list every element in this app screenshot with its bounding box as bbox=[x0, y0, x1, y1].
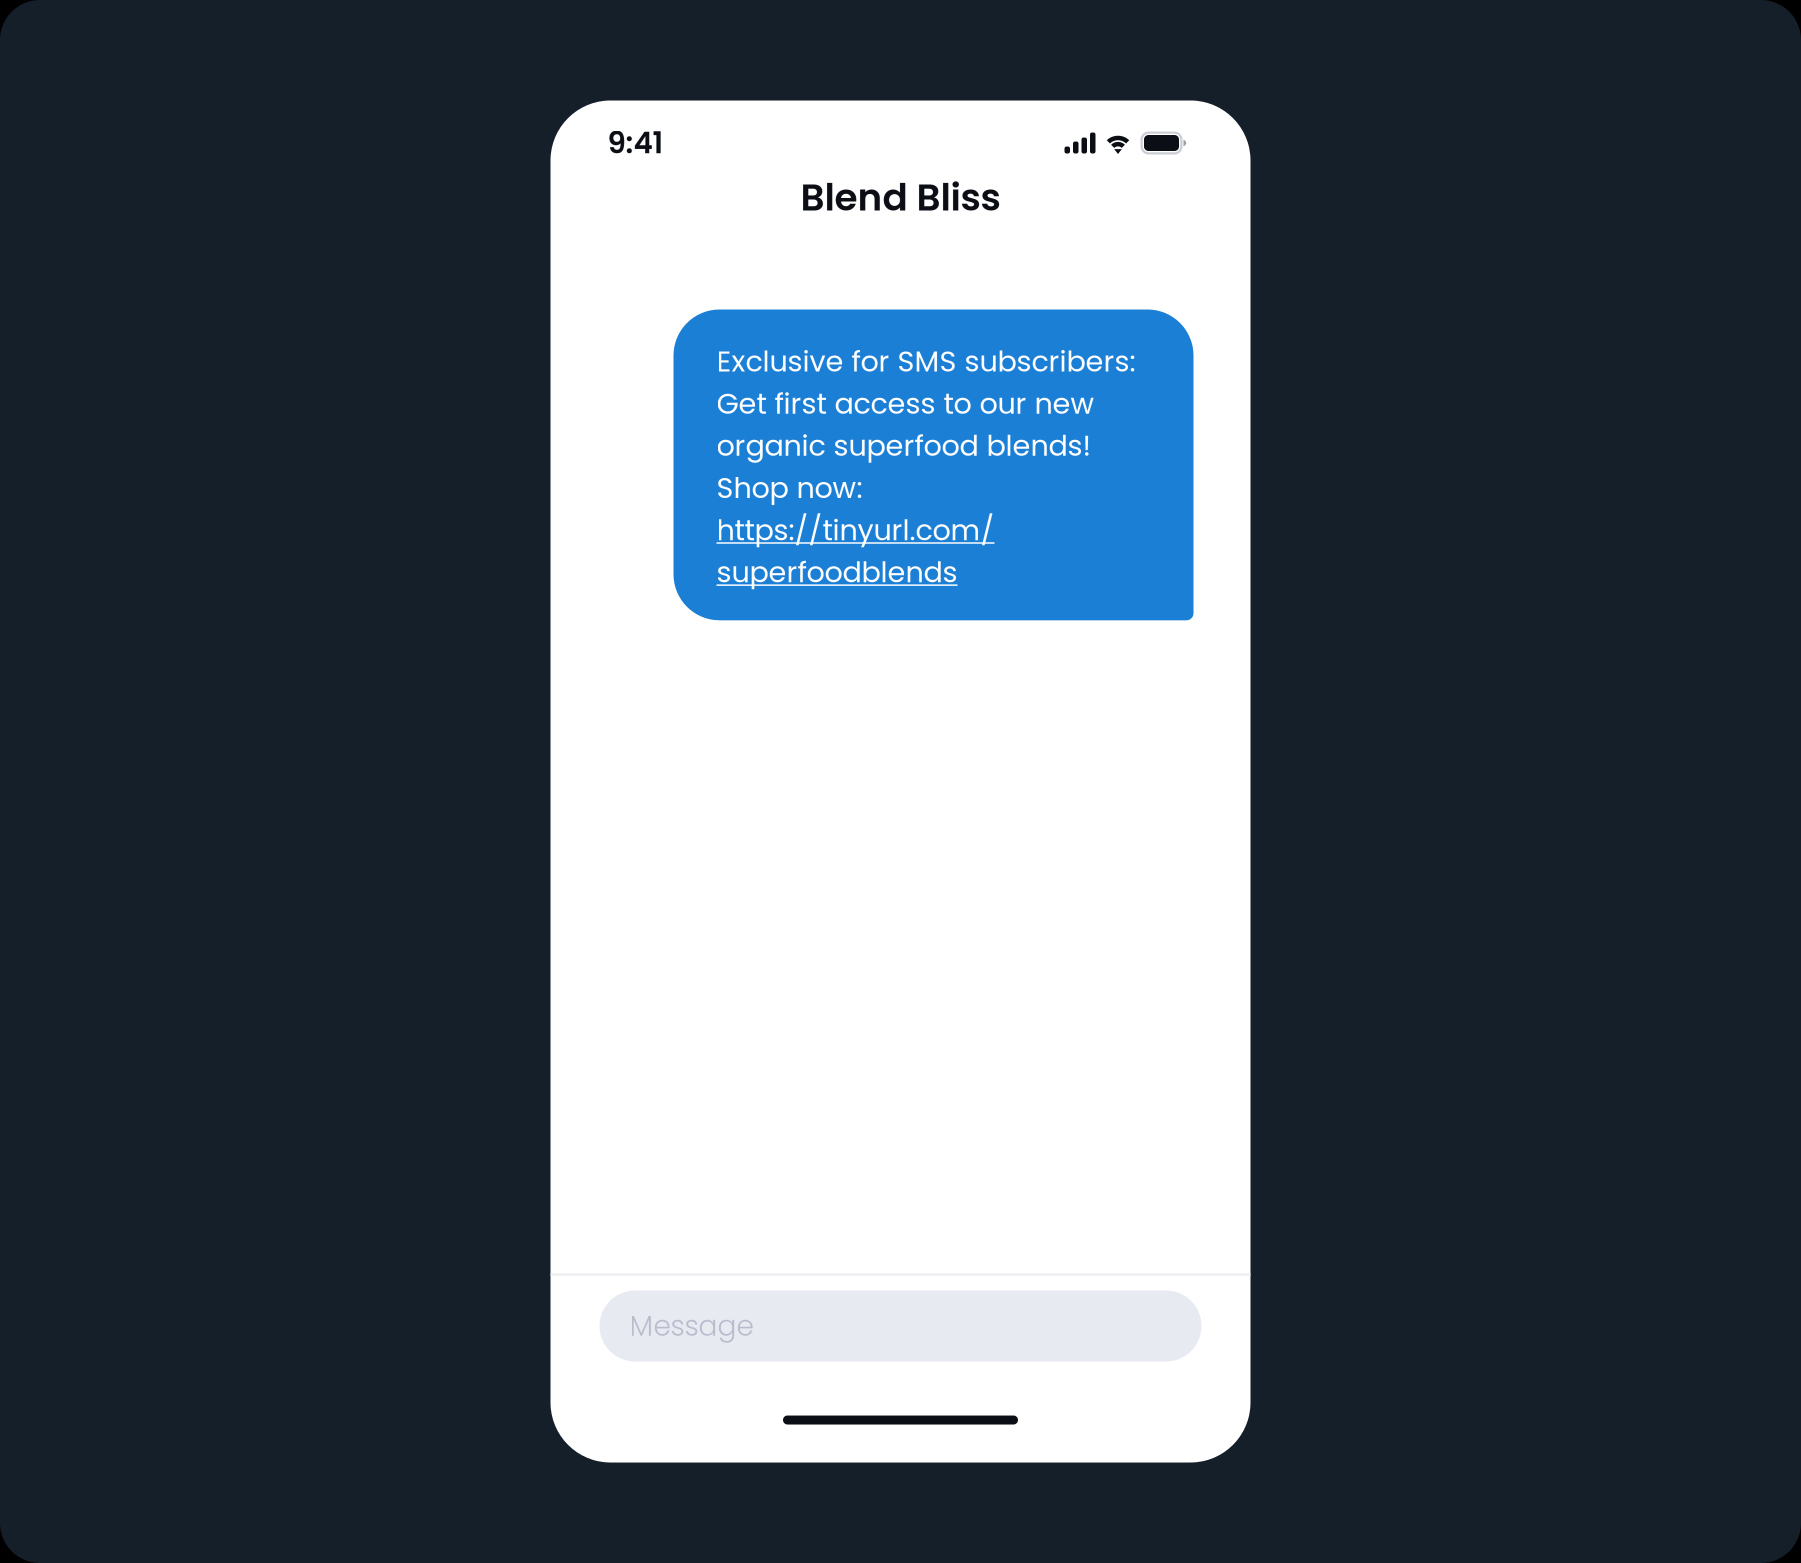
staticText: superfoodblends bbox=[716, 552, 957, 592]
staticText: https://tinyurl.com/ bbox=[716, 510, 994, 550]
button[interactable]: Message bbox=[599, 1290, 1201, 1361]
staticText: Shop now: bbox=[716, 468, 862, 508]
staticText: Exclusive for SMS subscribers: bbox=[716, 341, 1135, 382]
staticText: Blend Bliss bbox=[800, 171, 1000, 224]
staticText: Message bbox=[629, 1306, 753, 1346]
button[interactable]: Blend Bliss bbox=[550, 185, 1250, 209]
staticText: organic superfood blends! bbox=[716, 426, 1091, 466]
staticText: Get first access to our new bbox=[716, 384, 1094, 424]
staticText: 9:41 bbox=[607, 122, 663, 164]
button[interactable]: Exclusive for SMS subscribers: bbox=[673, 309, 1193, 620]
